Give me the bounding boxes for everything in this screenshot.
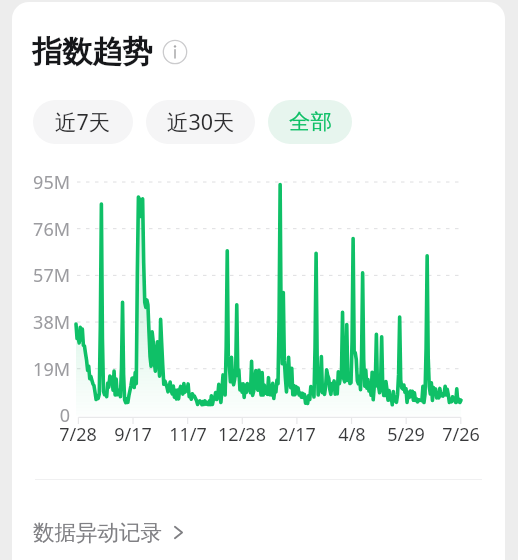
staticText: 指数趋势	[32, 33, 152, 71]
staticText: 9/17	[114, 422, 152, 446]
button[interactable]: 数据异动记录	[12, 510, 505, 554]
staticText: 38M	[33, 310, 70, 334]
staticText: 0	[59, 403, 70, 427]
button[interactable]: 近30天	[146, 100, 255, 144]
button[interactable]: 近7天	[33, 100, 133, 144]
staticText: 数据异动记录	[33, 519, 162, 546]
staticText: 近7天	[55, 107, 111, 136]
staticText: 全部	[289, 108, 332, 135]
button[interactable]: Info	[162, 39, 188, 65]
staticText: 95M	[33, 170, 70, 194]
staticText: 7/28	[59, 422, 97, 446]
staticText: 近30天	[167, 107, 235, 136]
staticText: 76M	[33, 217, 70, 241]
staticText: 4/8	[338, 422, 366, 446]
staticText: 11/7	[169, 422, 207, 446]
staticText: 12/28	[218, 422, 266, 446]
staticText: 2/17	[278, 422, 316, 446]
button[interactable]: 全部	[268, 100, 352, 144]
staticText: 19M	[33, 357, 70, 381]
staticText: 7/26	[442, 422, 480, 446]
staticText: 5/29	[387, 422, 425, 446]
staticText: 57M	[33, 263, 70, 287]
